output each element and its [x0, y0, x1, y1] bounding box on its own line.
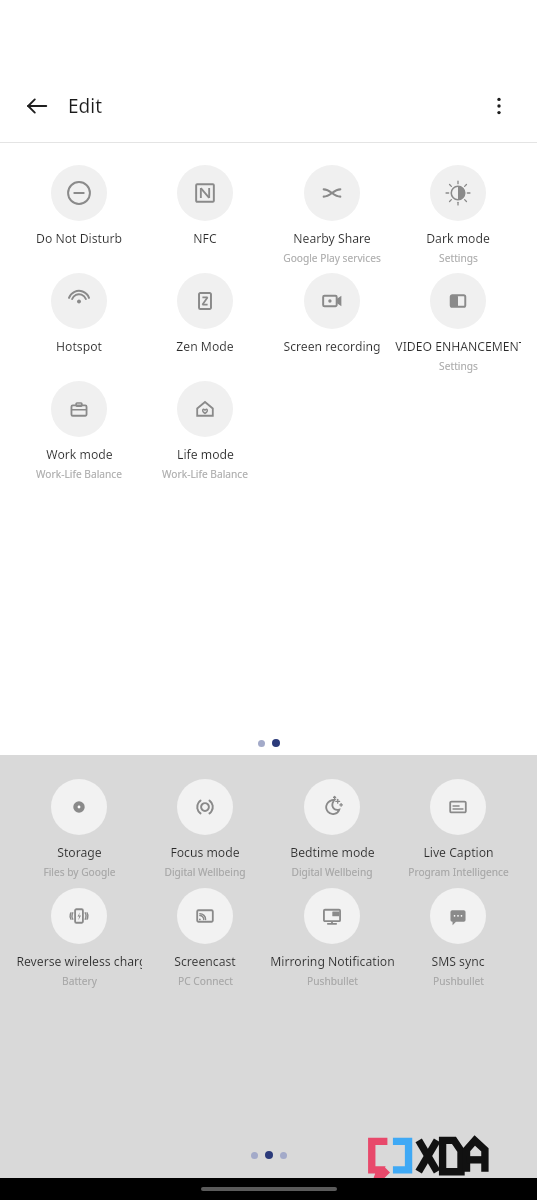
- button[interactable]: Storage: [16, 779, 142, 879]
- staticText: Pushbullet: [307, 974, 358, 988]
- staticText: Nearby Share: [293, 230, 371, 247]
- staticText: Google Play services: [283, 251, 381, 265]
- button[interactable]: Mirroring Notification: [269, 888, 395, 988]
- staticText: Do Not Disturb: [36, 230, 122, 247]
- staticText: PC Connect: [178, 974, 233, 988]
- button[interactable]: More options: [477, 84, 521, 128]
- staticText: Live Caption: [423, 844, 494, 861]
- staticText: Settings: [439, 359, 478, 373]
- staticText: Storage: [57, 844, 102, 861]
- button[interactable]: Zen Mode: [142, 273, 268, 355]
- button[interactable]: NFC: [142, 165, 268, 247]
- button[interactable]: Focus mode: [142, 779, 268, 879]
- staticText: Life mode: [177, 446, 234, 463]
- button[interactable]: Life mode: [142, 381, 268, 481]
- staticText: Settings: [439, 251, 478, 265]
- staticText: Screencast: [174, 953, 236, 970]
- staticText: NFC: [193, 230, 217, 247]
- staticText: Work-Life Balance: [36, 467, 122, 481]
- button[interactable]: Do Not Disturb: [16, 165, 142, 247]
- staticText: Zen Mode: [176, 338, 234, 355]
- staticText: Digital Wellbeing: [291, 865, 373, 879]
- button[interactable]: Screencast: [142, 888, 268, 988]
- staticText: Dark mode: [426, 230, 490, 247]
- staticText: Screen recording: [283, 338, 381, 355]
- button[interactable]: Nearby Share: [269, 165, 395, 265]
- staticText: Work-Life Balance: [162, 467, 248, 481]
- staticText: Work mode: [46, 446, 113, 463]
- staticText: Files by Google: [43, 865, 116, 879]
- button[interactable]: SMS sync: [395, 888, 521, 988]
- button[interactable]: Work mode: [16, 381, 142, 481]
- button[interactable]: Live Caption: [395, 779, 521, 879]
- staticText: Mirroring Notification: [270, 953, 395, 970]
- button[interactable]: Bedtime mode: [269, 779, 395, 879]
- staticText: Bedtime mode: [290, 844, 375, 861]
- staticText: Focus mode: [170, 844, 240, 861]
- staticText: Program Intelligence: [408, 865, 509, 879]
- staticText: SMS sync: [431, 953, 485, 970]
- button[interactable]: Screen recording: [269, 273, 395, 355]
- staticText: VIDEO ENHANCEMENT: [395, 338, 521, 355]
- staticText: Digital Wellbeing: [164, 865, 246, 879]
- button[interactable]: VIDEO ENHANCEMENT: [395, 273, 521, 373]
- button[interactable]: Dark mode: [395, 165, 521, 265]
- button[interactable]: Hotspot: [16, 273, 142, 355]
- button[interactable]: Back: [15, 84, 59, 128]
- staticText: Edit: [68, 93, 103, 119]
- staticText: Pushbullet: [433, 974, 484, 988]
- staticText: Reverse wireless charging: [16, 953, 142, 970]
- button[interactable]: Reverse wireless charging: [16, 888, 142, 988]
- staticText: Hotspot: [56, 338, 102, 355]
- staticText: Battery: [62, 974, 97, 988]
